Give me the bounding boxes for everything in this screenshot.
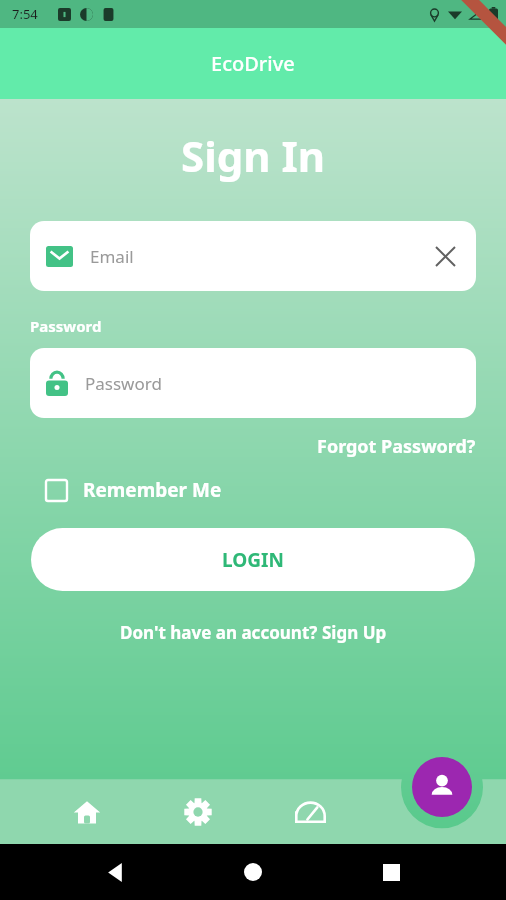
button[interactable]: Clear email	[430, 241, 460, 271]
button[interactable]: Settings	[163, 784, 233, 840]
staticText: Email	[90, 245, 134, 268]
staticText: 7:54	[12, 5, 38, 23]
staticText: Sign Up	[322, 621, 387, 644]
button[interactable]: Email	[30, 221, 476, 291]
staticText: Password	[85, 372, 162, 395]
staticText: Don't have an account?	[120, 621, 322, 644]
button[interactable]: Home	[52, 784, 122, 840]
button[interactable]: LOGIN	[31, 528, 475, 591]
button[interactable]: Remember Me	[46, 477, 222, 503]
button[interactable]: Recents	[369, 850, 413, 894]
button[interactable]: Don't have an account?	[120, 621, 387, 644]
button[interactable]: Home	[231, 850, 275, 894]
button[interactable]: Profile	[412, 757, 472, 817]
button[interactable]: Dashboard	[275, 784, 345, 840]
button[interactable]: Password	[30, 348, 476, 418]
staticText: Remember Me	[83, 477, 222, 503]
staticText: Password	[30, 316, 102, 336]
button[interactable]: Back	[94, 850, 138, 894]
staticText: Forgot Password?	[317, 434, 476, 459]
staticText: EcoDrive	[211, 50, 295, 77]
staticText: Sign In	[181, 127, 326, 184]
button[interactable]: Forgot Password?	[317, 434, 476, 459]
staticText: LOGIN	[222, 547, 284, 573]
